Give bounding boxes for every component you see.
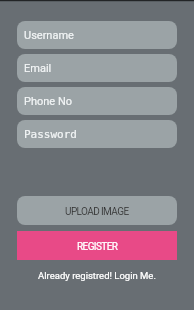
staticText: Username xyxy=(24,29,74,42)
button[interactable]: UPLOAD IMAGE xyxy=(17,196,177,225)
button[interactable]: Password xyxy=(17,120,177,148)
button[interactable]: Phone No xyxy=(17,87,177,115)
staticText: Phone No xyxy=(24,95,73,108)
button[interactable]: Email xyxy=(17,54,177,82)
button[interactable]: REGISTER xyxy=(17,231,177,260)
staticText: Email xyxy=(24,62,52,75)
button[interactable]: Username xyxy=(17,21,177,49)
staticText: Password xyxy=(24,128,77,141)
staticText: Already registred! Login Me. xyxy=(38,270,156,281)
staticText: UPLOAD IMAGE xyxy=(65,206,129,218)
button[interactable]: Already registred! Login Me. xyxy=(17,270,177,281)
staticText: REGISTER xyxy=(77,241,118,253)
